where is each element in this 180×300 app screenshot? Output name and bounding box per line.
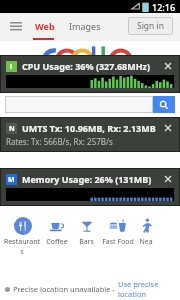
button[interactable]: Fast Food [100,216,135,247]
staticText: Sign in [137,20,164,32]
staticText: Coffee [46,237,68,247]
staticText: N [9,124,15,134]
staticText: Use precise location [118,279,175,299]
button[interactable]: Nea [135,216,157,247]
button[interactable]: Bars [73,216,100,247]
button[interactable]: Sign in [128,17,173,35]
staticText: 12:16 [152,1,176,13]
staticText: Bars [79,237,94,247]
staticText: UMTS Tx: 10.96MB, Rx: 2.13MB [22,122,156,134]
staticText: Restaurants [4,237,40,257]
button[interactable]: Close [162,60,174,72]
button[interactable]: Search [153,96,175,113]
button[interactable]: Restaurants [4,216,40,257]
staticText: Fast Food [102,237,134,247]
button[interactable]: M [1,169,179,205]
button[interactable]: Menu [7,17,25,35]
staticText: Web [35,20,55,32]
button[interactable]: Close [162,122,174,134]
staticText: Images [69,20,101,32]
button[interactable]: i [1,56,179,92]
button[interactable]: Images [67,20,103,32]
button[interactable]: Use precise location [118,279,175,299]
button[interactable]: N [1,118,179,151]
button[interactable] [5,96,153,113]
staticText: Precise location unavailable - [13,284,115,294]
button[interactable]: Coffee [40,216,73,247]
staticText: Nea [139,237,153,247]
button[interactable]: Web [33,20,57,32]
staticText: Memory Usage: 26% (131MB) [22,173,152,185]
staticText: CPU Usage: 36% (327.68MHz) [22,60,151,72]
button[interactable]: Close [162,173,174,185]
staticText: M [8,175,15,185]
staticText: i [10,62,13,72]
staticText: Rates: Tx: 566B/s, Rx: 257B/s [6,136,113,147]
